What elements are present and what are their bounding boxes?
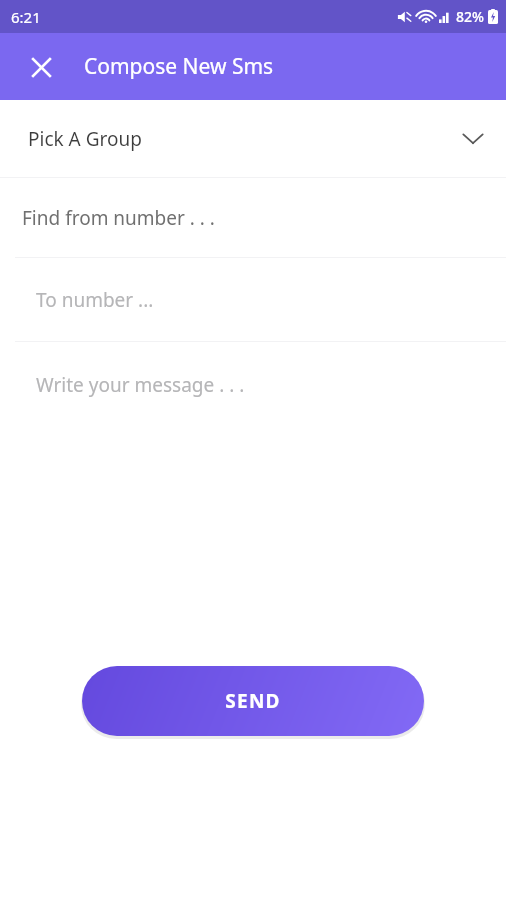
staticText: Write your message . . . — [36, 372, 245, 398]
staticText: 82% — [456, 7, 484, 26]
button[interactable]: Pick A Group — [0, 100, 506, 177]
staticText: 6:21 — [11, 7, 41, 27]
staticText: Find from number . . . — [22, 205, 215, 231]
staticText: Pick A Group — [28, 126, 142, 152]
button[interactable]: Find from number . . . — [0, 178, 506, 257]
staticText: Compose New Sms — [84, 52, 274, 81]
button[interactable]: Write your message . . . — [0, 342, 506, 428]
staticText: SEND — [225, 688, 281, 714]
button[interactable]: SEND — [82, 666, 424, 736]
button[interactable]: To number ... — [0, 258, 506, 341]
staticText: To number ... — [36, 287, 154, 313]
button[interactable]: Close — [17, 43, 65, 91]
